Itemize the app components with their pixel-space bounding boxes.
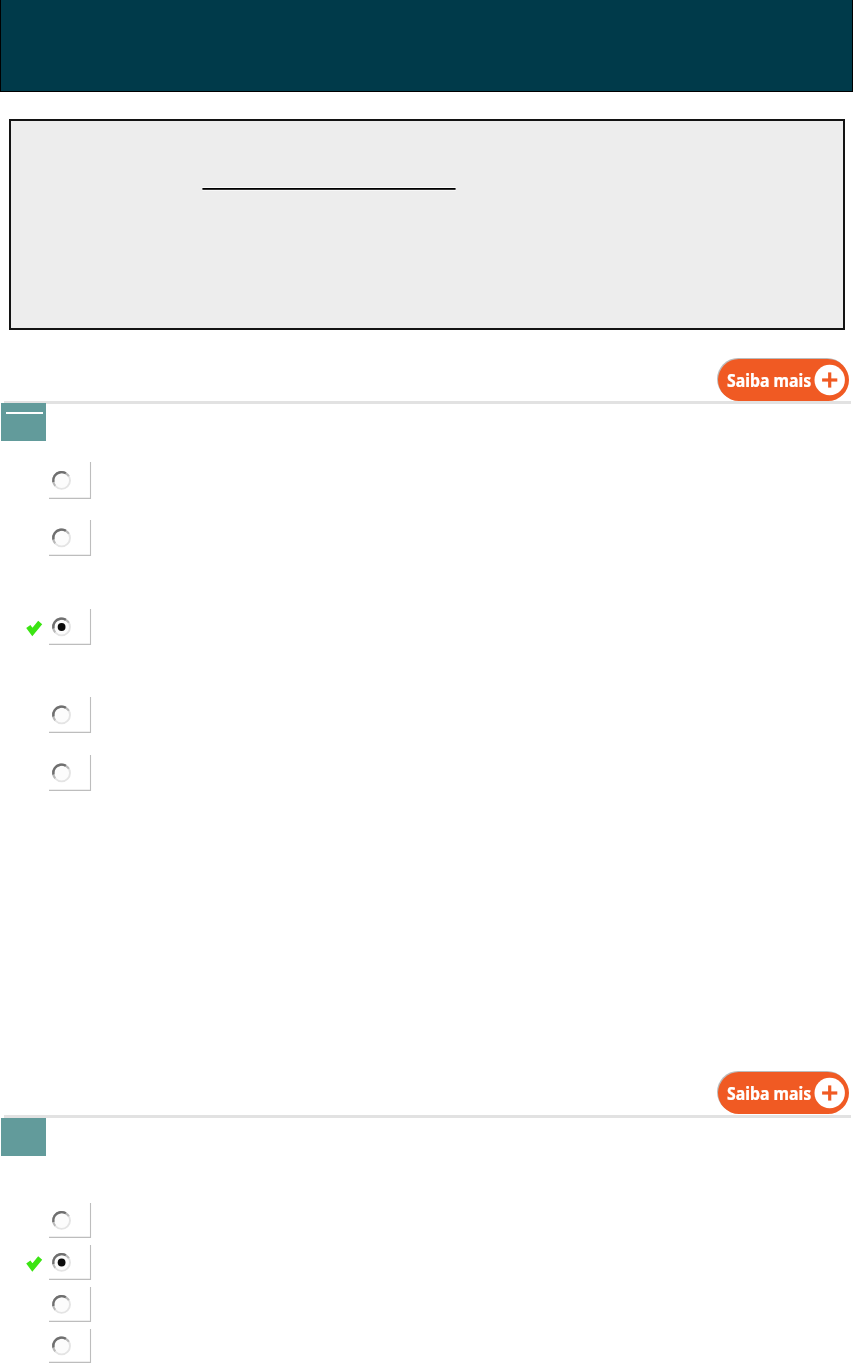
button[interactable]: Answer option xyxy=(0,462,853,499)
button[interactable]: Selected answer xyxy=(0,1245,853,1280)
button[interactable]: Answer option xyxy=(0,1203,853,1238)
staticText: Saiba mais xyxy=(727,368,812,392)
button[interactable]: Question 1 xyxy=(1,403,46,441)
button[interactable]: Saiba mais xyxy=(718,359,849,401)
button[interactable]: Answer option xyxy=(0,520,853,556)
button[interactable]: App header xyxy=(0,0,853,92)
button[interactable]: Saiba mais xyxy=(718,1072,849,1114)
button[interactable]: Answer option xyxy=(0,1329,853,1363)
button[interactable]: Answer option xyxy=(0,755,853,791)
button[interactable]: Answer option xyxy=(0,697,853,733)
staticText: Saiba mais xyxy=(727,1081,812,1105)
button[interactable]: Selected answer xyxy=(0,609,853,645)
button[interactable]: Answer option xyxy=(0,1287,853,1322)
